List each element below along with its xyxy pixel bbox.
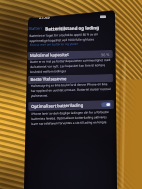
staticText: 96 % — [101, 52, 110, 57]
staticText: Dette er et mal pa batterikapasiteten sa… — [30, 58, 111, 74]
staticText: Maksimal kapasitet — [30, 52, 69, 59]
button[interactable]: Beste Ytelsesevne — [27, 74, 114, 84]
staticText: 21:03 — [39, 14, 50, 21]
staticText: Ytelsesstyring er ikke brukt fordi denne… — [31, 82, 112, 98]
staticText: Beste Ytelsesevne — [30, 76, 66, 83]
button[interactable]: Maksimal kapasitet — [27, 50, 113, 60]
button[interactable]: Optimalisert batterilading toggle — [101, 102, 111, 107]
button[interactable]: Optimalisert batterilading — [28, 100, 114, 111]
button[interactable]: Finn ut mer om batterier og ytelse — [30, 42, 79, 47]
button[interactable]: Batteri — [26, 25, 43, 32]
staticText: iPhone lerer av den daglige ladingen din… — [31, 110, 113, 126]
staticText: Batteri — [29, 26, 42, 31]
staticText: Optimalisert batterilading — [31, 103, 84, 110]
staticText: Batteriet er laget for a beholde opptil … — [29, 32, 111, 43]
staticText: Batteritilstand og lading — [45, 24, 99, 32]
